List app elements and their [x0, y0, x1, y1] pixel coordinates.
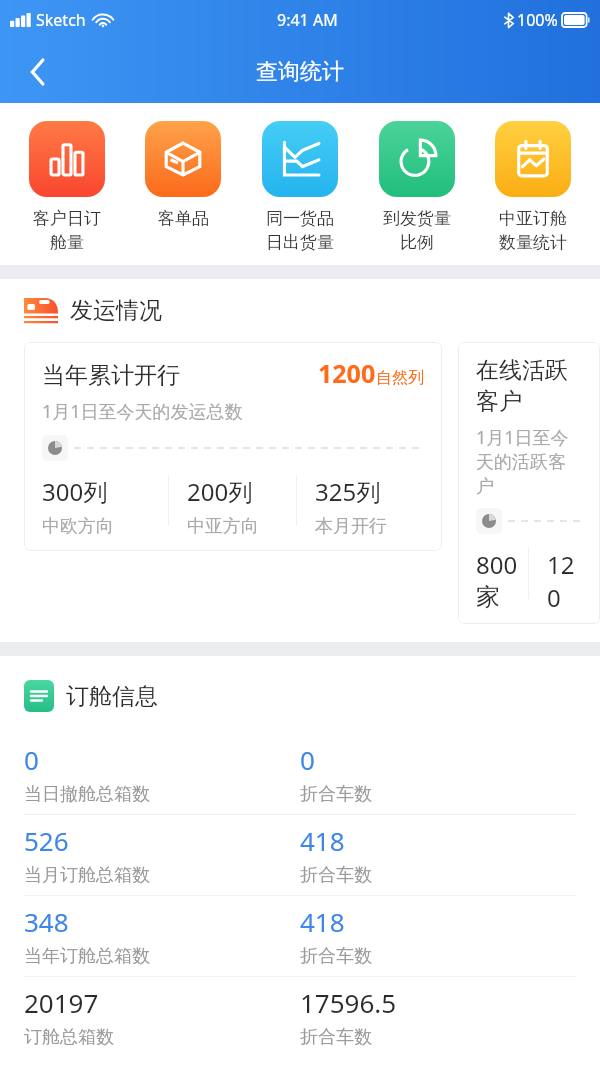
- staticText: 17596.5: [300, 985, 397, 1020]
- button[interactable]: 0: [0, 734, 600, 814]
- button[interactable]: 同一货品: [250, 121, 350, 253]
- button[interactable]: 客单品: [133, 121, 233, 229]
- staticText: 数量统计: [499, 232, 567, 253]
- staticText: 同一货品: [266, 208, 334, 229]
- staticText: 325列: [315, 475, 381, 508]
- staticText: 300列: [42, 475, 108, 508]
- staticText: 200列: [187, 475, 253, 508]
- staticText: 发运情况: [70, 296, 162, 325]
- staticText: Sketch: [36, 9, 86, 31]
- staticText: 折合车数: [300, 945, 372, 968]
- staticText: 20197: [24, 985, 99, 1020]
- staticText: 折合车数: [300, 1026, 372, 1049]
- button[interactable]: 当年累计开行: [24, 342, 442, 551]
- button[interactable]: 到发货量: [367, 121, 467, 253]
- staticText: 9:41 AM: [277, 9, 338, 31]
- staticText: 客单品: [158, 208, 209, 229]
- staticText: 比例: [400, 232, 434, 253]
- button[interactable]: Back: [16, 50, 60, 94]
- button[interactable]: 在线活跃客户: [458, 342, 600, 624]
- staticText: 348: [24, 904, 69, 939]
- staticText: 到发货量: [383, 208, 451, 229]
- staticText: 查询统计: [256, 58, 344, 86]
- staticText: 舱量: [50, 232, 84, 253]
- staticText: 中欧方向: [42, 515, 114, 537]
- staticText: 0: [24, 742, 39, 777]
- staticText: 自然列: [376, 368, 424, 388]
- staticText: 在线活跃客户: [476, 356, 582, 416]
- staticText: 当日撤舱总箱数: [24, 783, 150, 806]
- staticText: 526: [24, 823, 69, 858]
- staticText: 1月1日至今天的发运总数: [42, 399, 243, 424]
- staticText: 本月开行: [315, 515, 387, 537]
- button[interactable]: 348: [0, 896, 600, 976]
- staticText: 1月1日至今天的活跃客户: [476, 425, 582, 497]
- staticText: 订舱信息: [66, 682, 158, 711]
- button[interactable]: 20197: [0, 977, 600, 1057]
- staticText: 客户日订: [33, 208, 101, 229]
- staticText: 订舱总箱数: [24, 1026, 114, 1049]
- staticText: 当月订舱总箱数: [24, 864, 150, 887]
- staticText: 100%: [517, 9, 558, 31]
- button[interactable]: 客户日订: [17, 121, 117, 253]
- staticText: 800家: [476, 548, 528, 610]
- staticText: 当年订舱总箱数: [24, 945, 150, 968]
- staticText: 120家: [547, 548, 582, 610]
- staticText: 中亚订舱: [499, 208, 567, 229]
- button[interactable]: 中亚订舱: [483, 121, 583, 253]
- staticText: 日出货量: [266, 232, 334, 253]
- staticText: 当年累计开行: [42, 361, 180, 390]
- button[interactable]: 526: [0, 815, 600, 895]
- staticText: 中亚方向: [187, 515, 259, 537]
- staticText: 418: [300, 823, 345, 858]
- staticText: 0: [300, 742, 315, 777]
- staticText: 折合车数: [300, 783, 372, 806]
- staticText: 1200: [318, 356, 376, 390]
- staticText: 418: [300, 904, 345, 939]
- staticText: 折合车数: [300, 864, 372, 887]
